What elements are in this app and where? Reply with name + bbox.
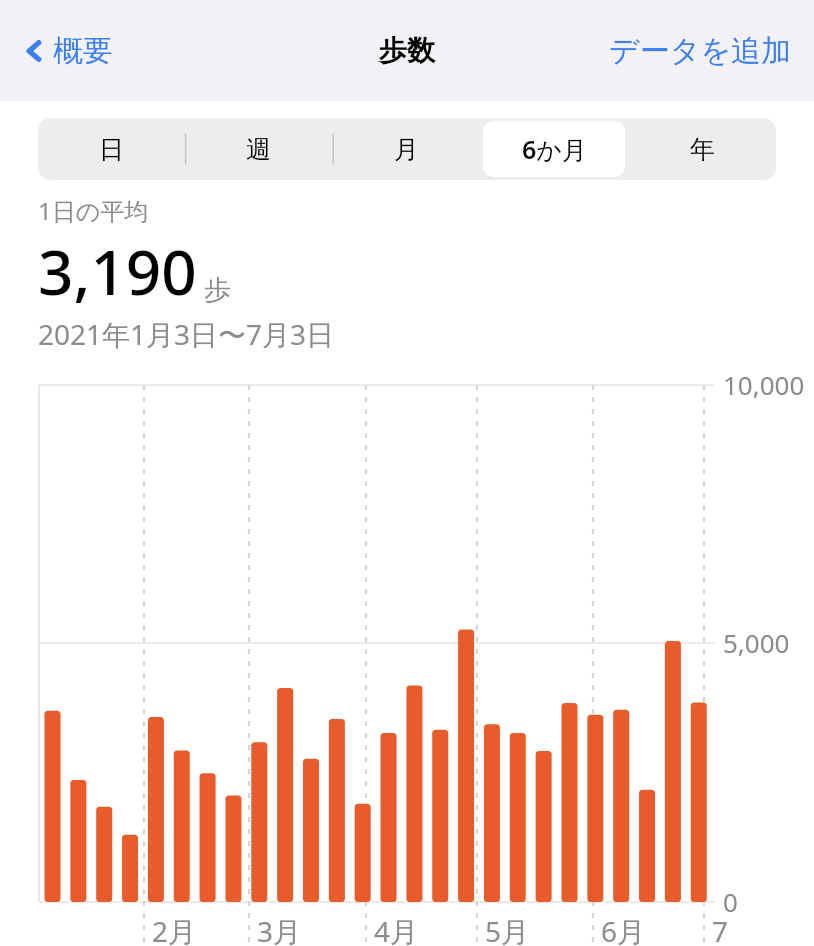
staticText: 10,000: [723, 367, 805, 402]
staticText: 月: [394, 134, 419, 165]
staticText: 5月: [485, 912, 530, 946]
button[interactable]: 日: [41, 121, 182, 177]
staticText: 5,000: [723, 625, 790, 660]
staticText: 6月: [601, 912, 646, 946]
staticText: 歩: [204, 273, 231, 307]
button[interactable]: 年: [631, 121, 773, 177]
button[interactable]: データを追加: [601, 26, 800, 76]
button[interactable]: 月: [335, 121, 477, 177]
staticText: 歩数: [379, 33, 435, 68]
staticText: 週: [246, 134, 271, 165]
staticText: 7: [712, 912, 729, 946]
staticText: 年: [690, 134, 715, 165]
staticText: 2月: [152, 912, 197, 946]
button[interactable]: 概要: [20, 26, 117, 76]
staticText: 1日の平均: [38, 194, 149, 227]
staticText: 0: [723, 884, 738, 919]
button[interactable]: 6か月: [483, 121, 625, 177]
staticText: 3,190: [38, 229, 197, 313]
staticText: 3月: [257, 912, 302, 946]
staticText: 日: [99, 134, 124, 165]
button[interactable]: 週: [188, 121, 329, 177]
staticText: データを追加: [609, 32, 792, 70]
staticText: 4月: [374, 912, 419, 946]
staticText: 概要: [53, 32, 113, 70]
staticText: 2021年1月3日〜7月3日: [38, 315, 335, 353]
staticText: 6か月: [522, 132, 587, 166]
